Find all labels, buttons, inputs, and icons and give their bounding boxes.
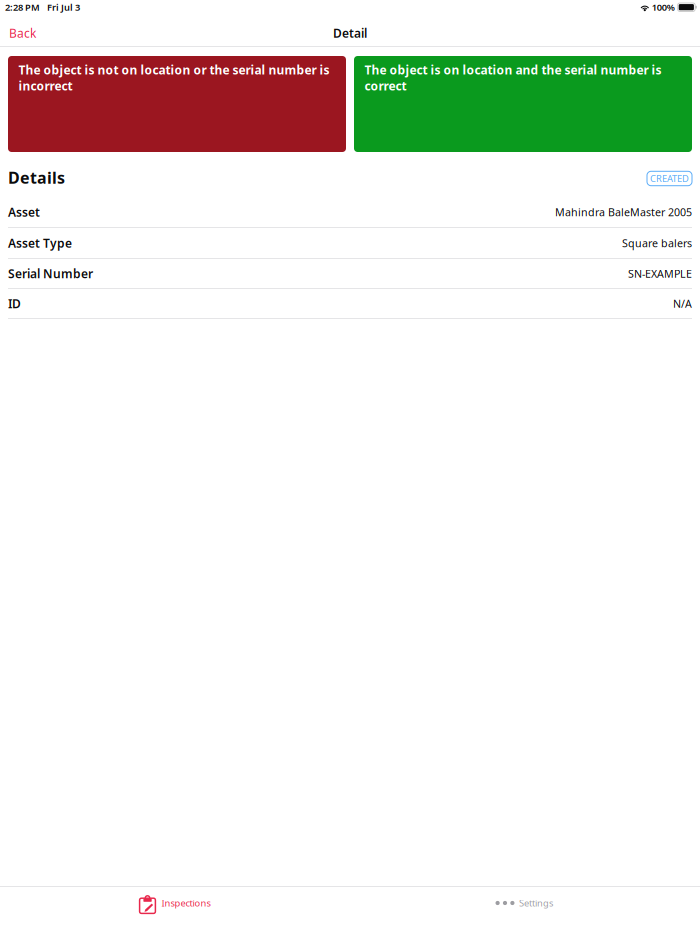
staticText: Asset bbox=[8, 204, 40, 220]
staticText: Detail bbox=[333, 25, 367, 41]
button[interactable]: Settings bbox=[350, 888, 700, 918]
staticText: CREATED bbox=[650, 172, 689, 185]
staticText: Settings bbox=[519, 897, 553, 909]
staticText: 2:28 PM bbox=[5, 1, 40, 13]
staticText: ID bbox=[8, 295, 21, 311]
button[interactable]: Back bbox=[0, 18, 45, 48]
staticText: SN-EXAMPLE bbox=[628, 266, 692, 281]
staticText: N/A bbox=[673, 296, 692, 311]
button[interactable]: The object is not on location or the ser… bbox=[8, 56, 346, 152]
staticText: Back bbox=[9, 25, 36, 41]
staticText: Asset Type bbox=[8, 235, 72, 251]
staticText: Details bbox=[8, 167, 65, 188]
staticText: Mahindra BaleMaster 2005 bbox=[555, 205, 692, 219]
button[interactable]: The object is on location and the serial… bbox=[354, 56, 692, 152]
staticText: Fri Jul 3 bbox=[47, 1, 80, 13]
staticText: Square balers bbox=[622, 236, 692, 250]
staticText: Inspections bbox=[161, 897, 210, 909]
staticText: Serial Number bbox=[8, 265, 93, 281]
staticText: The object is on location and the serial… bbox=[364, 62, 661, 94]
staticText: The object is not on location or the ser… bbox=[18, 62, 329, 94]
button[interactable]: Inspections bbox=[0, 888, 350, 918]
staticText: 100% bbox=[652, 1, 675, 13]
